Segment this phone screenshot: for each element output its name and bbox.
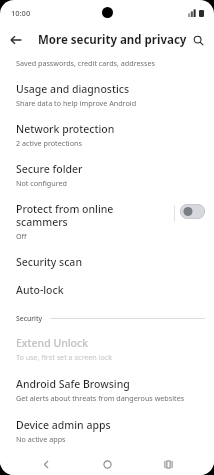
button[interactable]: Android Safe Browsing (0, 363, 214, 404)
staticText: Saved passwords, credit cards, addresses (16, 58, 155, 68)
staticText: Protect from online scammers (16, 202, 114, 229)
staticText: Security scan (16, 255, 82, 269)
staticText: Get alerts about threats from dangerous … (16, 393, 185, 403)
button[interactable]: Protect from online scammers toggle (180, 204, 205, 219)
staticText: Secure folder (16, 162, 83, 176)
staticText: More security and privacy (38, 32, 187, 48)
staticText: Device admin apps (16, 418, 111, 432)
button[interactable]: Security scan (0, 241, 214, 270)
button[interactable]: Extend Unlock (0, 323, 214, 363)
button[interactable]: Auto-lock (0, 270, 214, 298)
staticText: Off (16, 231, 27, 241)
staticText: Network protection (16, 122, 115, 136)
button[interactable]: Search (186, 28, 210, 52)
button[interactable]: Home (92, 453, 122, 475)
button[interactable]: Back (31, 453, 61, 475)
button[interactable]: Secure folder (0, 149, 214, 189)
staticText: Usage and diagnostics (16, 82, 130, 96)
staticText: Share data to help improve Android (16, 98, 137, 108)
button[interactable]: Network protection (0, 109, 214, 149)
staticText: SIM lock (16, 459, 59, 473)
staticText: Extend Unlock (16, 336, 89, 350)
staticText: No active apps (16, 434, 66, 444)
staticText: Security (16, 314, 43, 323)
staticText: 10:00 (11, 8, 31, 18)
button[interactable]: Protect from online scammers (0, 202, 174, 241)
button[interactable]: Back (4, 28, 28, 52)
button[interactable]: Device admin apps (0, 404, 214, 445)
staticText: 2 active protections (16, 138, 82, 148)
staticText: Auto-lock (16, 283, 64, 297)
button[interactable]: Usage and diagnostics (0, 68, 214, 109)
button[interactable]: Recent apps (153, 453, 183, 475)
staticText: To use, first set a screen lock (16, 352, 113, 362)
staticText: Not configured (16, 178, 68, 188)
button[interactable]: SIM lock (0, 445, 214, 474)
staticText: Android Safe Browsing (16, 377, 130, 391)
